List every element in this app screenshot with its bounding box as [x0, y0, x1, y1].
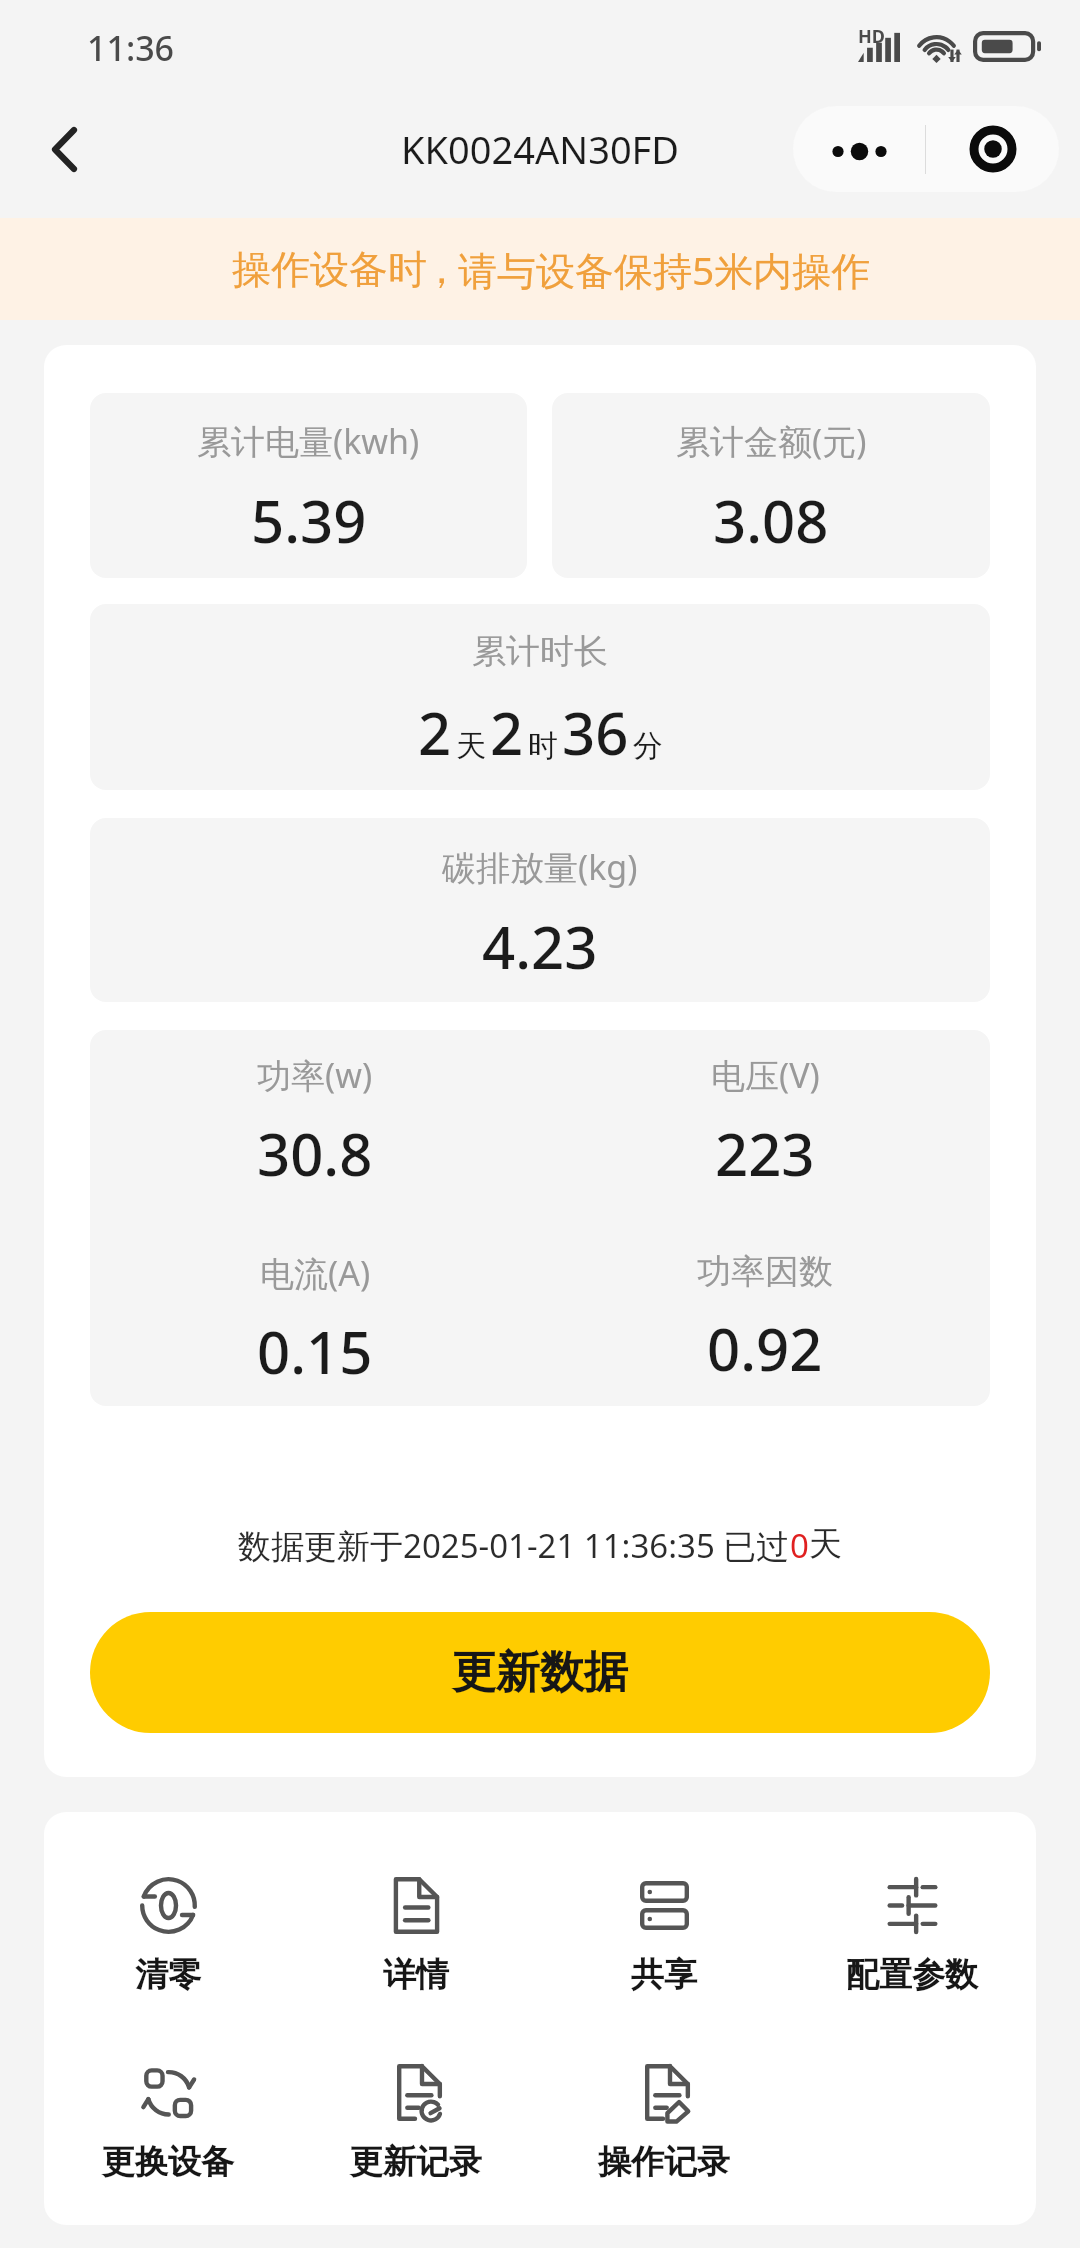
- staticText: 36: [562, 693, 629, 772]
- staticText: 碳排放量(kg): [442, 844, 638, 890]
- staticText: 详情: [383, 1954, 449, 1996]
- staticText: 0: [790, 1523, 809, 1568]
- staticText: 清零: [135, 1954, 201, 1996]
- staticText: 0.15: [257, 1312, 373, 1391]
- staticText: 11:36: [87, 25, 175, 71]
- button[interactable]: Close mini program: [926, 106, 1059, 192]
- staticText: 0.92: [707, 1309, 823, 1388]
- staticText: 配置参数: [846, 1954, 978, 1996]
- staticText: 更新数据: [452, 1645, 628, 1700]
- staticText: 功率因数: [697, 1250, 833, 1293]
- button[interactable]: 更新记录: [292, 2064, 540, 2183]
- staticText: 分: [633, 727, 663, 765]
- staticText: 5.39: [251, 481, 367, 560]
- staticText: 天: [456, 727, 486, 765]
- staticText: 更新记录: [350, 2141, 482, 2183]
- staticText: KK0024AN30FD: [401, 123, 680, 175]
- staticText: 天: [809, 1523, 842, 1565]
- button[interactable]: 详情: [292, 1877, 540, 1996]
- staticText: 2: [490, 693, 524, 772]
- button[interactable]: 更换设备: [44, 2064, 292, 2183]
- button[interactable]: 操作记录: [540, 2064, 788, 2183]
- staticText: 2: [418, 693, 452, 772]
- staticText: HD: [858, 24, 885, 49]
- staticText: 223: [715, 1114, 815, 1193]
- button[interactable]: 清零: [44, 1877, 292, 1996]
- staticText: 操作设备时: [232, 245, 427, 294]
- staticText: 累计金额(元): [676, 418, 867, 464]
- staticText: 电压(V): [711, 1052, 820, 1098]
- button[interactable]: More options: [793, 106, 925, 192]
- button[interactable]: 共享: [540, 1877, 788, 1996]
- staticText: 数据更新于2025-01-21 11:36:35 已过: [238, 1523, 790, 1568]
- staticText: 3.08: [713, 481, 829, 560]
- button[interactable]: 更新数据: [90, 1612, 990, 1733]
- staticText: 共享: [631, 1954, 697, 1996]
- button[interactable]: 配置参数: [788, 1877, 1036, 1996]
- staticText: ，: [422, 245, 461, 294]
- staticText: 电流(A): [260, 1250, 371, 1296]
- staticText: 操作记录: [598, 2141, 730, 2183]
- staticText: 功率(w): [257, 1052, 373, 1098]
- staticText: 4.23: [482, 907, 598, 986]
- staticText: 30.8: [257, 1114, 373, 1193]
- staticText: 时: [528, 727, 558, 765]
- staticText: 累计电量(kwh): [197, 418, 420, 464]
- staticText: 累计时长: [472, 630, 608, 673]
- button[interactable]: Back: [22, 107, 106, 191]
- staticText: 更换设备: [102, 2141, 234, 2183]
- staticText: 请与设备保持5米内操作: [458, 243, 871, 296]
